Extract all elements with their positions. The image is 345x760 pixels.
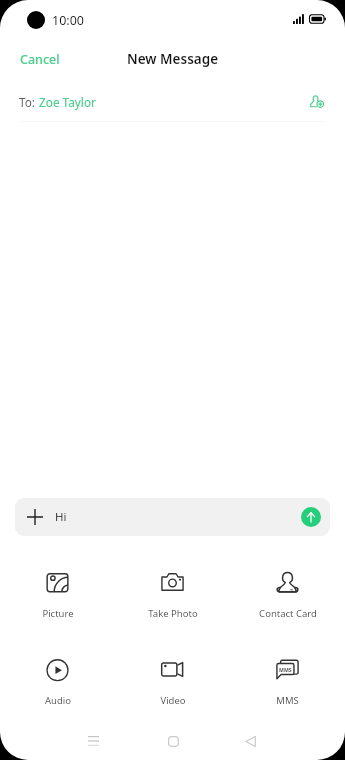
staticText: To: <box>19 94 36 110</box>
staticText: Picture <box>42 607 74 620</box>
staticText: Hi <box>55 509 67 525</box>
button[interactable]: Take Photo <box>115 566 230 625</box>
button[interactable]: Cancel <box>0 42 80 77</box>
button[interactable]: Contact Card <box>230 566 345 625</box>
button[interactable]: Audio <box>0 653 115 712</box>
button[interactable]: Video <box>115 653 230 712</box>
button[interactable]: Hi <box>15 498 330 536</box>
staticText: New Message <box>127 50 219 68</box>
staticText: MMS <box>276 694 299 707</box>
staticText: 10:00 <box>52 12 84 29</box>
staticText: Contact Card <box>259 607 317 620</box>
button[interactable]: Recents <box>75 723 111 759</box>
button[interactable]: MMS <box>230 653 345 712</box>
staticText: MMS <box>279 666 292 673</box>
staticText: Video <box>160 694 186 707</box>
button[interactable]: Picture <box>0 566 115 625</box>
button[interactable]: Send <box>301 507 321 527</box>
staticText: Take Photo <box>148 607 198 620</box>
button[interactable]: Home <box>155 723 191 759</box>
button[interactable]: Add contact <box>307 92 327 112</box>
button[interactable]: Back <box>232 723 268 759</box>
staticText: Audio <box>45 694 71 707</box>
staticText: Cancel <box>20 51 60 68</box>
staticText: Zoe Taylor <box>39 94 96 110</box>
